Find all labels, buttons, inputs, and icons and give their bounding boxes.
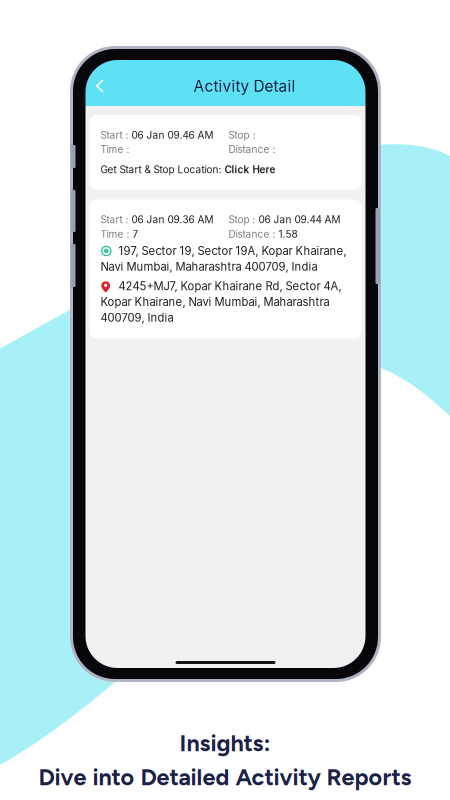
staticText: 06 Jan 09.46 AM	[131, 129, 213, 141]
staticText: Click Here	[224, 163, 275, 176]
button[interactable]: Back	[85, 73, 115, 99]
staticText: Time :	[100, 228, 129, 240]
staticText: 7	[132, 228, 138, 240]
staticText	[100, 228, 103, 240]
staticText: Insights:	[179, 729, 270, 757]
staticText: Time :	[100, 143, 129, 155]
button[interactable]: Click Here	[224, 163, 275, 176]
staticText	[100, 129, 103, 141]
staticText: Distance :	[228, 143, 275, 155]
staticText: Distance :	[228, 228, 275, 240]
staticText: Get Start & Stop Location:	[100, 163, 221, 176]
staticText	[100, 214, 103, 226]
staticText: Start :	[100, 129, 128, 141]
staticText: 4245+MJ7, Kopar Khairane Rd, Sector 4A, …	[100, 279, 341, 324]
staticText: Dive into Detailed Activity Reports	[38, 763, 411, 791]
staticText	[100, 143, 103, 155]
staticText: Stop :	[228, 129, 255, 141]
staticText: 197, Sector 19, Sector 19A, Kopar Khaira…	[100, 244, 346, 273]
staticText: 06 Jan 09.44 AM	[258, 214, 340, 226]
staticText: Activity Detail	[193, 77, 295, 96]
staticText: 1.58	[278, 228, 297, 240]
staticText: 06 Jan 09.36 AM	[131, 214, 213, 226]
staticText: Stop :	[228, 214, 255, 226]
staticText: Start :	[100, 214, 128, 226]
